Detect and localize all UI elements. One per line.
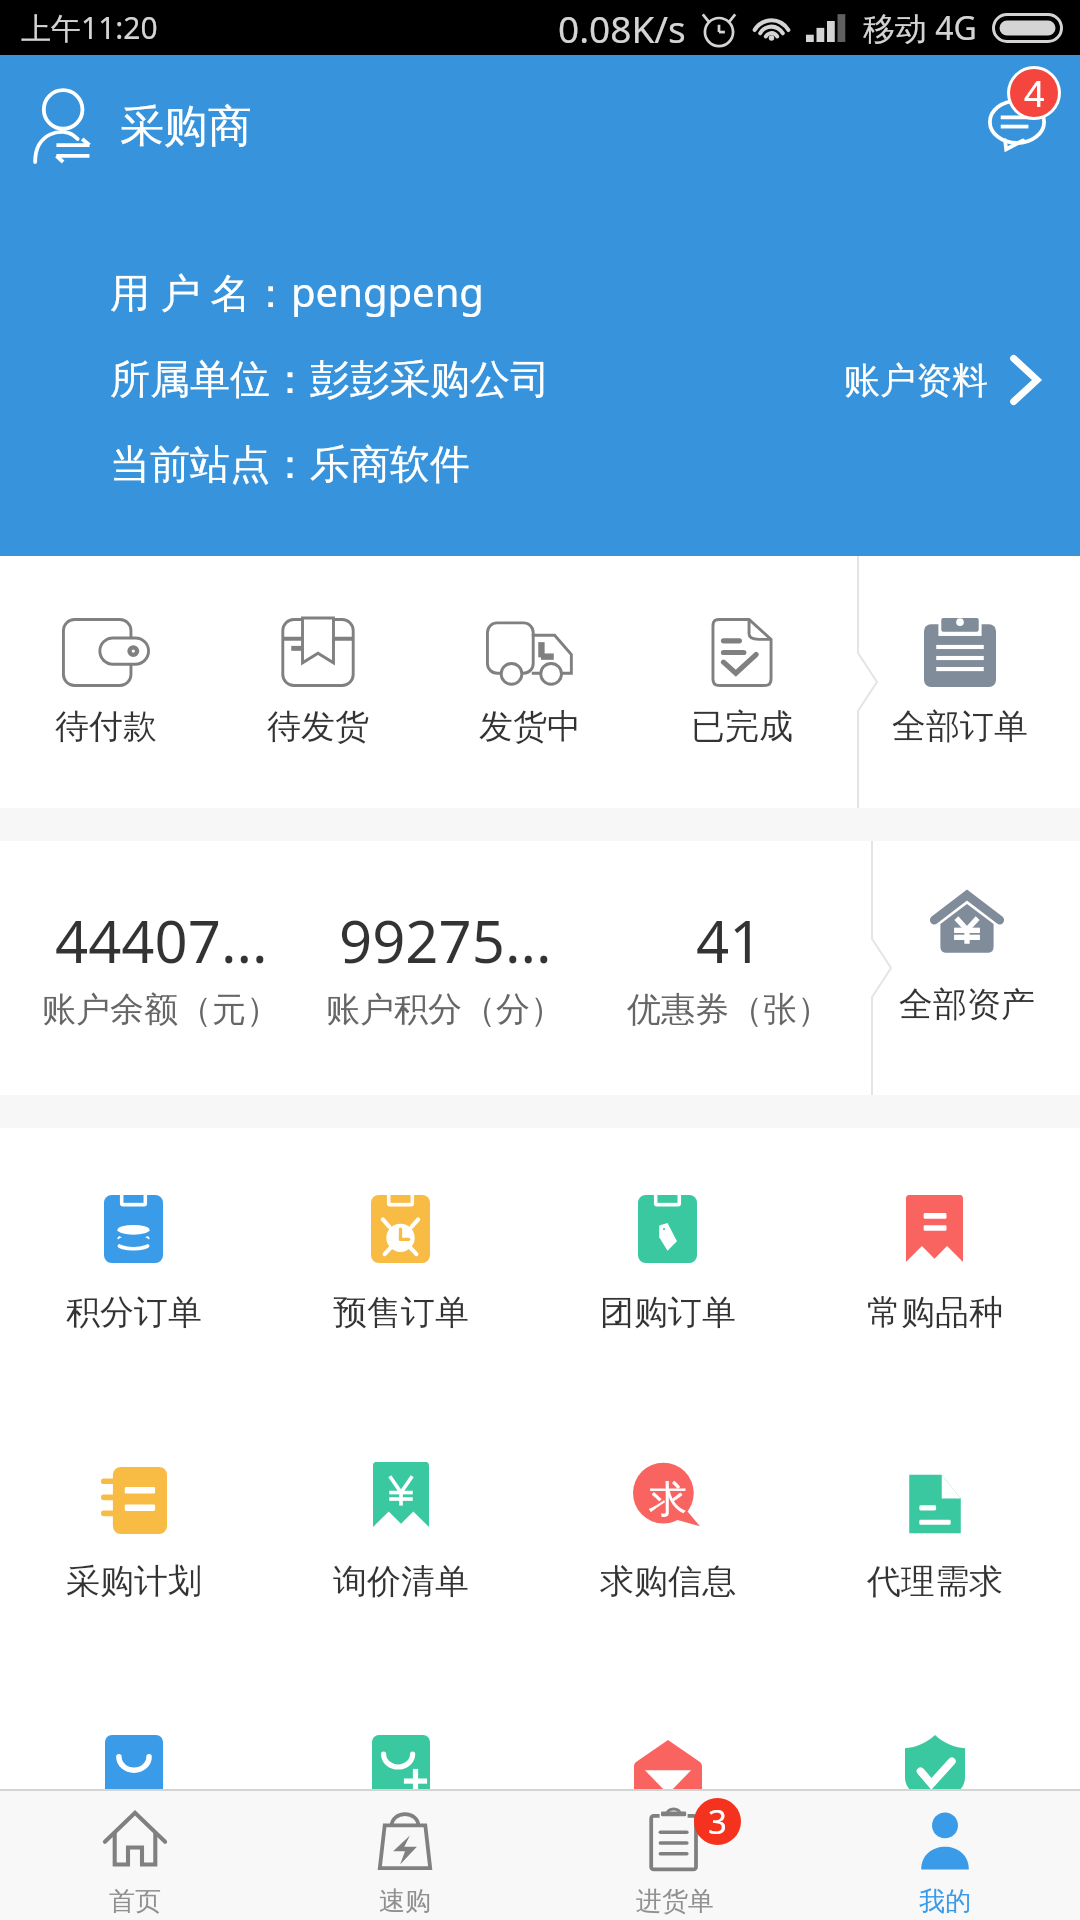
button[interactable]	[267, 1672, 534, 1920]
button[interactable]: 积分订单	[0, 1128, 267, 1400]
staticText: 全部资产	[899, 983, 1035, 1026]
staticText: 账户余额（元）	[42, 988, 280, 1031]
button[interactable]: 待发货	[212, 556, 424, 808]
staticText: 团购订单	[600, 1291, 736, 1334]
staticText: 发货中	[479, 705, 581, 748]
staticText: 41	[696, 901, 763, 980]
button[interactable]: 采购计划	[0, 1400, 267, 1672]
button[interactable]	[534, 1672, 801, 1920]
staticText: 常购品种	[867, 1291, 1003, 1334]
staticText: 账户资料	[844, 358, 988, 403]
staticText: 上午11:20	[21, 7, 158, 48]
staticText: 44407...	[55, 901, 268, 980]
staticText: 进货单	[636, 1885, 714, 1918]
button[interactable]: 采购商	[0, 90, 272, 162]
button[interactable]: Messages	[970, 66, 1080, 186]
button[interactable]: 3	[540, 1791, 810, 1920]
staticText: pengpeng	[291, 264, 484, 318]
button[interactable]: 44407...	[19, 841, 303, 1095]
staticText: 彭彭采购公司	[310, 354, 550, 404]
button[interactable]	[0, 1672, 267, 1920]
staticText: 预售订单	[333, 1291, 469, 1334]
button[interactable]: 代理需求	[801, 1400, 1068, 1672]
button[interactable]: 团购订单	[534, 1128, 801, 1400]
staticText: 询价清单	[333, 1560, 469, 1603]
staticText: 我的	[919, 1885, 971, 1918]
staticText: 优惠券（张）	[627, 988, 831, 1031]
staticText: 99275...	[339, 901, 552, 980]
staticText: 全部订单	[892, 705, 1028, 748]
staticText: 积分订单	[66, 1291, 202, 1334]
staticText: 代理需求	[867, 1560, 1003, 1603]
button[interactable]: 全部资产	[891, 841, 1043, 1095]
staticText: 求	[649, 1475, 687, 1523]
staticText: 账户积分（分）	[326, 988, 564, 1031]
button[interactable]: 已完成	[636, 556, 848, 808]
button[interactable]: 常购品种	[801, 1128, 1068, 1400]
staticText: 乐商软件	[310, 439, 470, 489]
button[interactable]	[801, 1672, 1068, 1920]
button[interactable]: 预售订单	[267, 1128, 534, 1400]
button[interactable]: 待付款	[0, 556, 212, 808]
staticText: 采购商	[120, 99, 252, 154]
staticText: 当前站点：	[110, 439, 310, 489]
button[interactable]: 我的	[810, 1791, 1080, 1920]
staticText: 3	[708, 1799, 727, 1844]
staticText: 速购	[379, 1885, 431, 1918]
button[interactable]: 99275...	[303, 841, 587, 1095]
button[interactable]: 询价清单	[267, 1400, 534, 1672]
staticText: 0.08K/s	[558, 3, 686, 53]
staticText: 待发货	[267, 705, 369, 748]
button[interactable]: 账户资料	[826, 340, 1058, 420]
staticText: 已完成	[691, 705, 793, 748]
staticText: 首页	[109, 1885, 161, 1918]
staticText: 求购信息	[600, 1560, 736, 1603]
staticText: 用 户 名：	[110, 264, 291, 319]
button[interactable]: 速购	[270, 1791, 540, 1920]
staticText: 采购计划	[66, 1560, 202, 1603]
button[interactable]: 全部订单	[877, 556, 1043, 808]
button[interactable]: 求	[534, 1400, 801, 1672]
staticText: 移动 4G	[863, 6, 977, 50]
staticText: 4	[1024, 69, 1045, 117]
button[interactable]: 发货中	[424, 556, 636, 808]
staticText: 待付款	[55, 705, 157, 748]
button[interactable]: 首页	[0, 1791, 270, 1920]
staticText: 所属单位：	[110, 354, 310, 404]
button[interactable]: 41	[587, 841, 871, 1095]
